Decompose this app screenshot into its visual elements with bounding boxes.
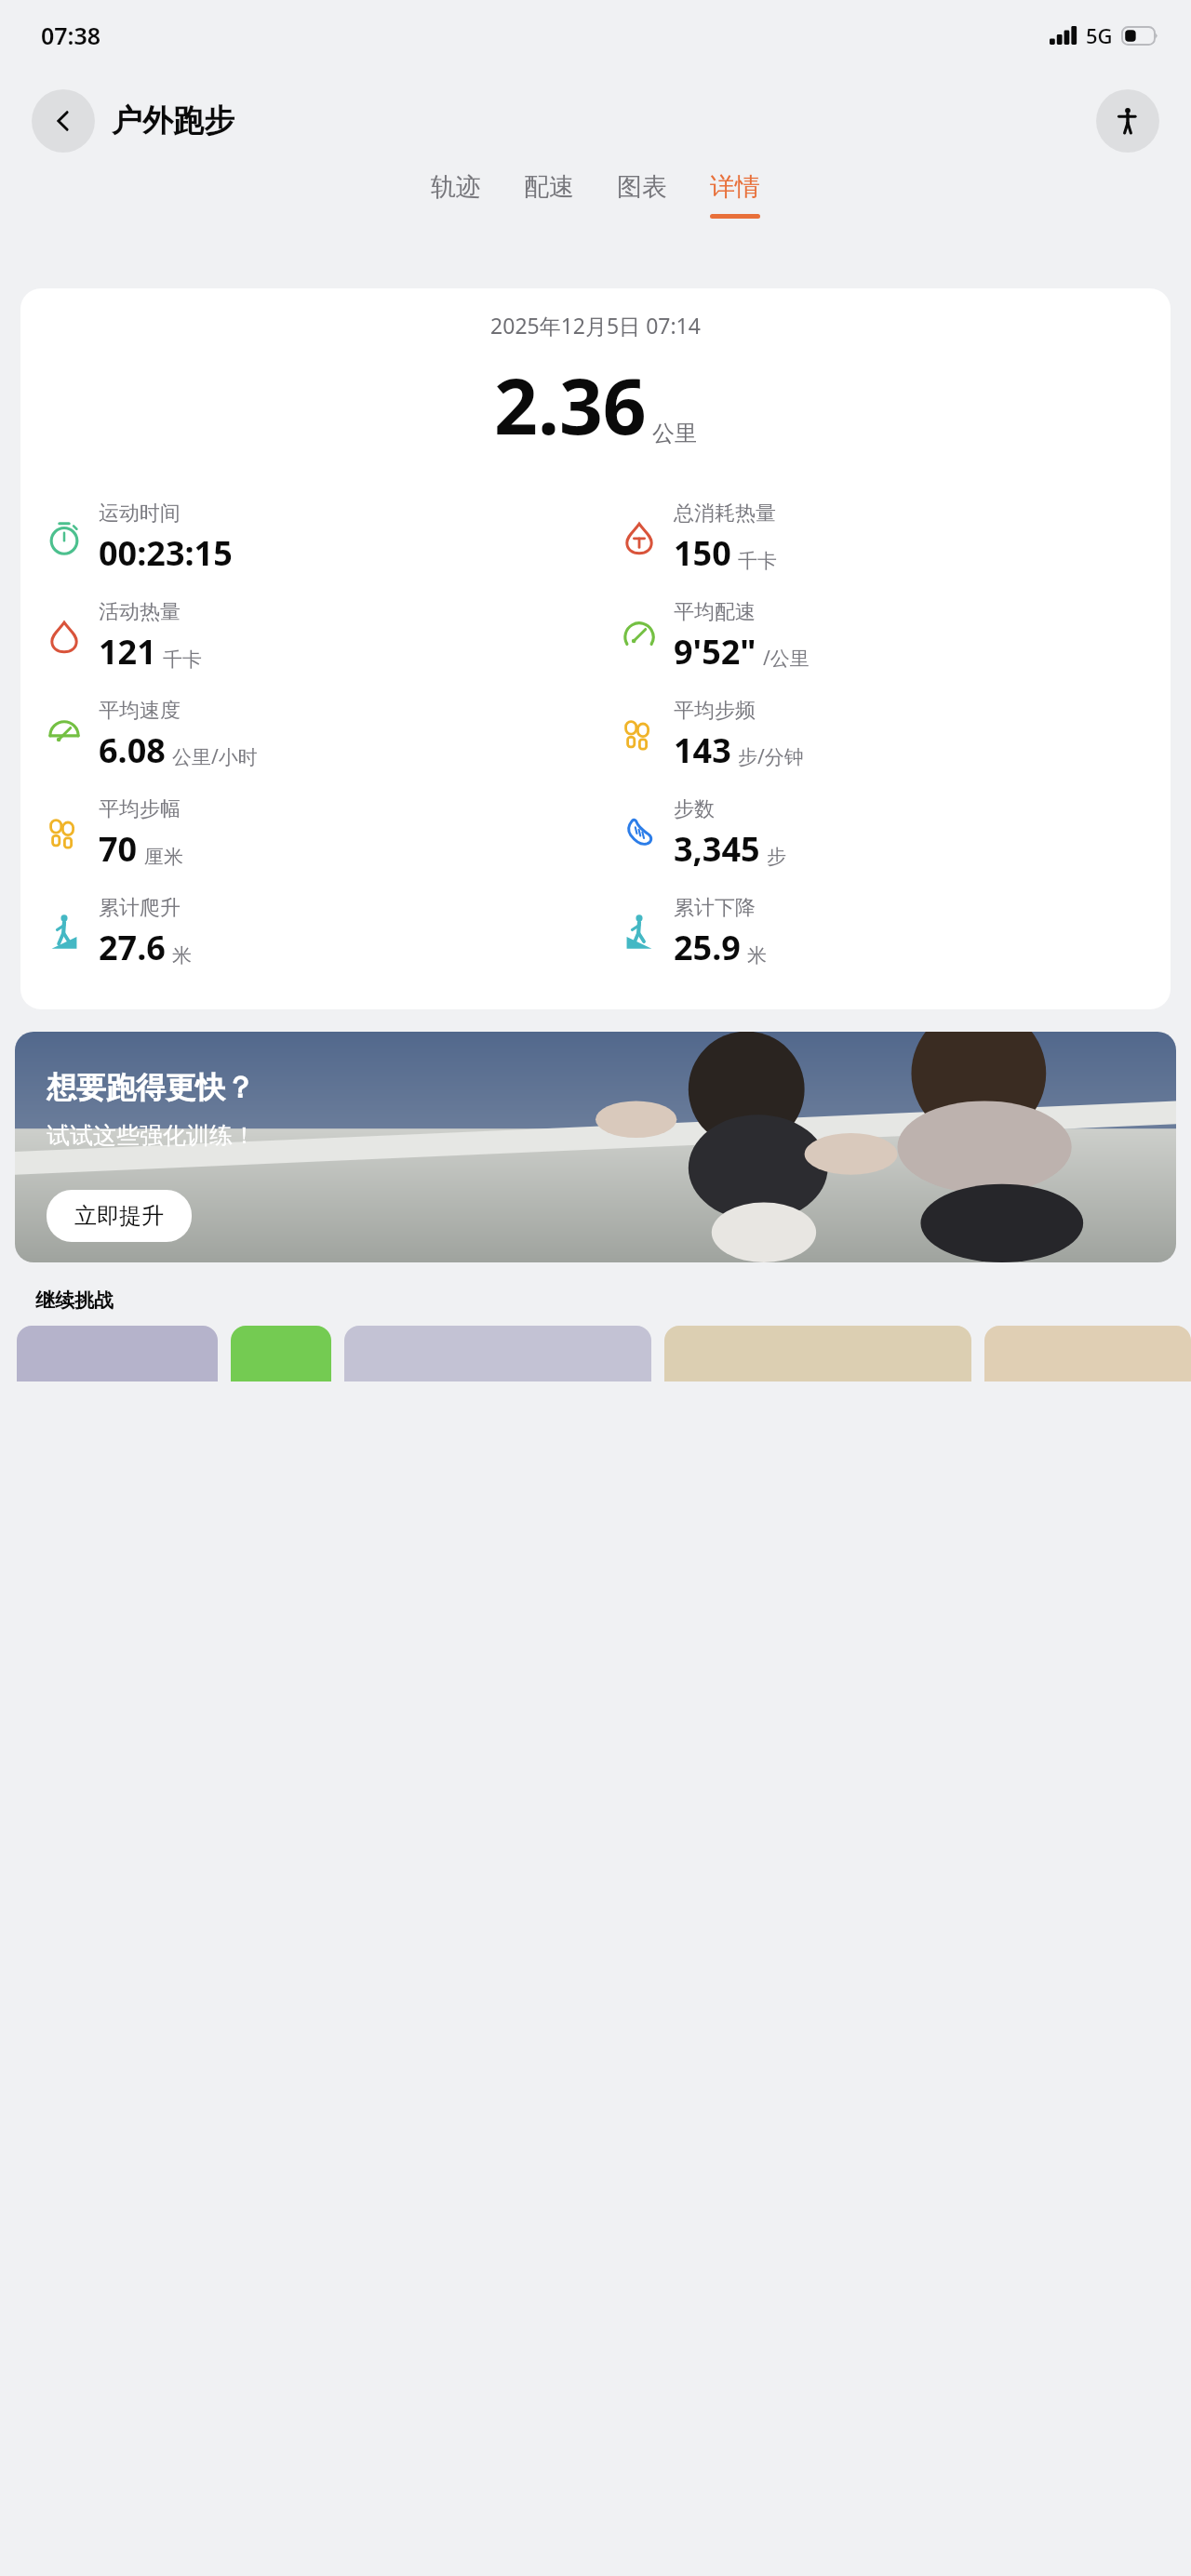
button[interactable]: 累计下降 bbox=[618, 883, 1171, 981]
button[interactable]: 配速 bbox=[524, 171, 574, 214]
button[interactable]: 2025年12月5日 07:14 bbox=[20, 288, 1171, 1009]
staticText: 立即提升 bbox=[74, 1202, 164, 1230]
staticText: 平均速度 bbox=[99, 698, 181, 724]
staticText: 25.9 bbox=[674, 925, 741, 970]
button[interactable]: 平均速度 bbox=[43, 686, 595, 784]
staticText: 公里 bbox=[652, 420, 697, 447]
staticText: 活动热量 bbox=[99, 599, 181, 625]
staticText: 详情 bbox=[710, 171, 760, 203]
staticText: 户外跑步 bbox=[112, 101, 234, 140]
staticText: 步 bbox=[767, 845, 786, 869]
staticText: 千卡 bbox=[738, 549, 777, 573]
staticText: 图表 bbox=[617, 171, 667, 203]
staticText: 轨迹 bbox=[431, 171, 481, 203]
button[interactable]: 想要跑得更快？ bbox=[15, 1032, 1176, 1262]
staticText: 143 bbox=[674, 727, 731, 773]
staticText: 总消耗热量 bbox=[674, 501, 776, 527]
staticText: 27.6 bbox=[99, 925, 166, 970]
staticText: 步/分钟 bbox=[738, 743, 804, 770]
staticText: 米 bbox=[747, 943, 767, 968]
staticText: 3,345 bbox=[674, 826, 760, 872]
staticText: 150 bbox=[674, 530, 731, 576]
staticText: 继续挑战 bbox=[35, 1288, 114, 1313]
button[interactable]: Back bbox=[32, 89, 95, 153]
staticText: 公里/小时 bbox=[172, 743, 258, 770]
button[interactable]: 平均步频 bbox=[618, 686, 1171, 784]
button[interactable] bbox=[344, 1326, 651, 1381]
staticText: 2025年12月5日 07:14 bbox=[20, 311, 1171, 340]
staticText: 121 bbox=[99, 629, 156, 674]
button[interactable]: Workout type bbox=[1096, 89, 1159, 153]
staticText: 累计下降 bbox=[674, 895, 756, 921]
button[interactable]: 平均配速 bbox=[618, 587, 1171, 686]
button[interactable]: 步数 bbox=[618, 784, 1171, 883]
staticText: 配速 bbox=[524, 171, 574, 203]
staticText: 千卡 bbox=[163, 647, 202, 672]
button[interactable] bbox=[231, 1326, 331, 1381]
staticText: 想要跑得更快？ bbox=[47, 1069, 255, 1106]
button[interactable]: 总消耗热量 bbox=[618, 488, 1171, 587]
button[interactable]: 图表 bbox=[617, 171, 667, 214]
button[interactable] bbox=[984, 1326, 1191, 1381]
staticText: 6.08 bbox=[99, 727, 166, 773]
staticText: 5G bbox=[1086, 21, 1113, 49]
staticText: 平均步幅 bbox=[99, 796, 181, 822]
staticText: 步数 bbox=[674, 796, 715, 822]
staticText: 07:38 bbox=[41, 20, 101, 51]
staticText: 70 bbox=[99, 826, 138, 872]
button[interactable]: 平均步幅 bbox=[43, 784, 595, 883]
staticText: /公里 bbox=[763, 645, 810, 672]
button[interactable]: 累计爬升 bbox=[43, 883, 595, 981]
staticText: 00:23:15 bbox=[99, 530, 233, 576]
button[interactable] bbox=[664, 1326, 971, 1381]
button[interactable]: 运动时间 bbox=[43, 488, 595, 587]
staticText: 平均配速 bbox=[674, 599, 756, 625]
staticText: 平均步频 bbox=[674, 698, 756, 724]
button[interactable]: 轨迹 bbox=[431, 171, 481, 214]
button[interactable]: 立即提升 bbox=[47, 1190, 192, 1242]
button[interactable] bbox=[17, 1326, 218, 1381]
staticText: 试试这些强化训练！ bbox=[47, 1121, 256, 1150]
staticText: 厘米 bbox=[144, 845, 183, 869]
button[interactable]: 活动热量 bbox=[43, 587, 595, 686]
staticText: 米 bbox=[172, 943, 192, 968]
staticText: 9'52" bbox=[674, 629, 756, 674]
staticText: 累计爬升 bbox=[99, 895, 181, 921]
button[interactable]: 详情 bbox=[710, 171, 760, 219]
staticText: 运动时间 bbox=[99, 501, 181, 527]
staticText: 2.36 bbox=[494, 353, 647, 457]
